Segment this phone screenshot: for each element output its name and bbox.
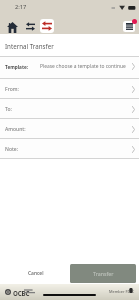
staticText: OCBC (13, 289, 30, 297)
staticText: Internal Transfer (5, 42, 54, 50)
button[interactable]: Amount: (0, 119, 139, 139)
button[interactable]: Menu (123, 21, 135, 32)
staticText: To: (5, 106, 12, 113)
button[interactable]: Transfers (25, 22, 35, 31)
button[interactable]: Transfer (70, 264, 136, 283)
staticText: From: (5, 86, 19, 93)
button[interactable]: Home (7, 22, 18, 33)
staticText: Cancel (28, 270, 44, 277)
button[interactable]: Payments (40, 19, 54, 33)
button[interactable]: Note: (0, 139, 139, 159)
button[interactable]: Cancel (3, 264, 68, 283)
staticText: Note: (5, 146, 19, 153)
staticText: Member FDIC (109, 289, 135, 294)
button[interactable]: To: (0, 99, 139, 119)
staticText: Amount: (5, 126, 26, 133)
staticText: Please choose a template to continue (40, 63, 126, 70)
staticText: Transfer (93, 270, 114, 277)
staticText: Template: (5, 64, 29, 70)
button[interactable]: Template: (0, 57, 139, 79)
staticText: 2:17 (15, 3, 27, 11)
button[interactable]: From: (0, 79, 139, 99)
